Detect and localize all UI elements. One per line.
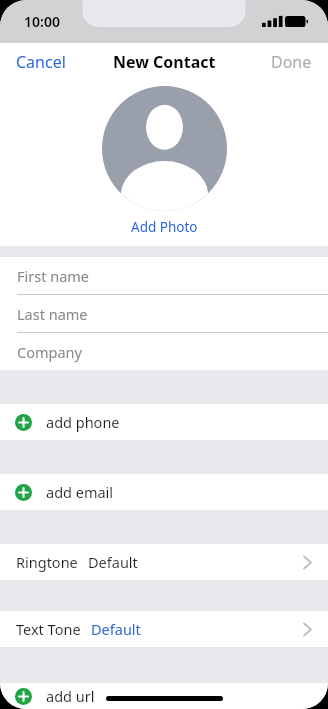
staticText: Text Tone	[16, 619, 81, 639]
staticText: Ringtone	[16, 552, 78, 572]
button[interactable]: add email	[0, 474, 328, 510]
other: add phone	[15, 414, 32, 431]
staticText: Done	[271, 51, 312, 72]
other: add url	[15, 688, 32, 705]
staticText: add email	[46, 482, 114, 502]
button[interactable]: First name	[0, 257, 328, 294]
staticText: Last name	[17, 304, 88, 324]
button[interactable]: Cancel	[0, 43, 82, 80]
button[interactable]: Company	[0, 333, 328, 370]
staticText: Default	[88, 552, 138, 572]
staticText: New Contact	[113, 51, 216, 73]
other: add email	[15, 484, 32, 501]
button[interactable]: Add Photo	[117, 215, 212, 239]
staticText: add url	[46, 686, 95, 706]
button[interactable]: add phone	[0, 404, 328, 440]
staticText: Add Photo	[131, 218, 198, 236]
staticText: Company	[17, 342, 82, 362]
button[interactable]: Text Tone	[0, 611, 328, 647]
staticText: Cancel	[16, 51, 66, 72]
button[interactable]: add url	[0, 683, 328, 709]
button[interactable]: Last name	[0, 295, 328, 332]
staticText: First name	[17, 266, 90, 286]
button[interactable]: Ringtone	[0, 544, 328, 580]
staticText: Default	[91, 619, 141, 639]
staticText: 10:00	[24, 12, 60, 31]
staticText: add phone	[46, 412, 120, 432]
button[interactable]: Done	[255, 43, 328, 80]
